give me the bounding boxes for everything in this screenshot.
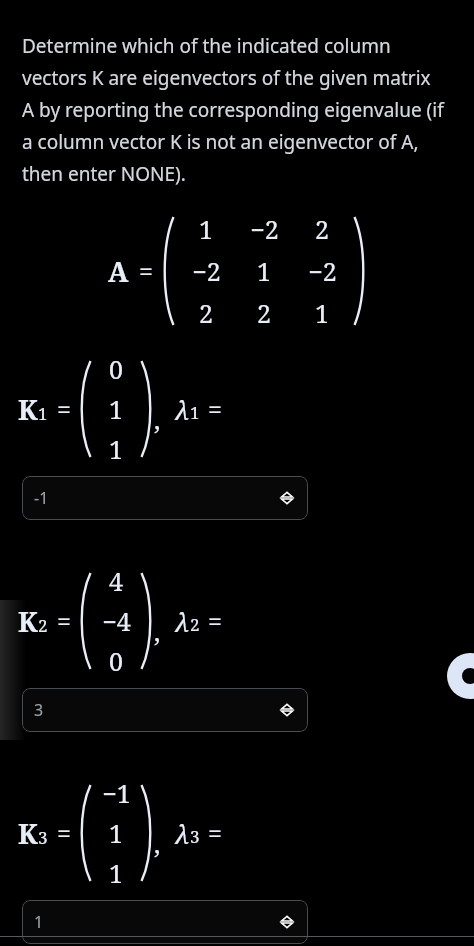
staticText: =: [139, 254, 153, 288]
staticText: −2: [250, 212, 279, 246]
staticText: 1: [109, 432, 123, 466]
staticText: 2: [190, 613, 200, 636]
staticText: 1: [315, 296, 329, 330]
staticText: =: [57, 392, 71, 426]
button[interactable]: 1: [22, 900, 308, 944]
staticText: 1: [190, 401, 200, 424]
staticText: =: [57, 604, 71, 638]
button[interactable]: Selection handle: [447, 653, 474, 699]
staticText: λ: [175, 392, 190, 427]
staticText: 2: [199, 296, 213, 330]
staticText: 1: [109, 392, 123, 426]
staticText: 3: [190, 825, 200, 848]
staticText: 1: [38, 402, 48, 425]
staticText: 2: [38, 614, 48, 637]
button[interactable]: 3: [22, 688, 308, 732]
staticText: A by reporting the corresponding eigenva…: [22, 97, 444, 123]
other: Increment or decrement value: [278, 701, 296, 719]
staticText: −4: [102, 604, 131, 638]
other: Increment or decrement value: [278, 489, 296, 507]
staticText: 3: [38, 826, 48, 849]
staticText: 0: [109, 352, 123, 386]
staticText: 0: [109, 644, 123, 678]
other: Increment or decrement value: [278, 913, 296, 931]
staticText: then enter NONE).: [22, 161, 186, 187]
staticText: 4: [109, 564, 123, 598]
staticText: K: [18, 391, 38, 428]
staticText: =: [208, 816, 222, 850]
staticText: ,: [154, 826, 161, 860]
staticText: -1: [34, 487, 49, 509]
staticText: λ: [175, 604, 190, 639]
staticText: 3: [34, 699, 44, 721]
staticText: =: [208, 604, 222, 638]
staticText: K: [18, 815, 38, 852]
staticText: K: [18, 603, 38, 640]
staticText: 1: [34, 911, 44, 933]
staticText: ,: [154, 402, 161, 436]
staticText: −2: [308, 254, 337, 288]
staticText: A: [108, 253, 129, 290]
staticText: 1: [257, 254, 271, 288]
staticText: 2: [257, 296, 271, 330]
staticText: =: [208, 392, 222, 426]
staticText: −2: [192, 254, 221, 288]
button[interactable]: -1: [22, 476, 308, 520]
staticText: ,: [154, 614, 161, 648]
staticText: 1: [109, 816, 123, 850]
staticText: vectors K are eigenvectors of the given …: [22, 65, 431, 91]
staticText: 2: [315, 212, 329, 246]
staticText: 1: [109, 856, 123, 890]
staticText: λ: [175, 816, 190, 851]
staticText: =: [57, 816, 71, 850]
staticText: a column vector K is not an eigenvector …: [22, 129, 419, 155]
staticText: 1: [199, 212, 213, 246]
staticText: −1: [102, 776, 131, 810]
staticText: Determine which of the indicated column: [22, 33, 391, 59]
